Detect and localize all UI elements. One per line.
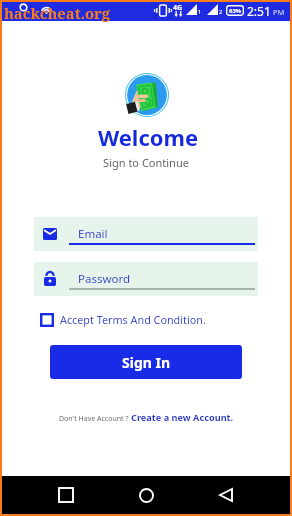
staticText: Don't Have Account ? (59, 414, 131, 424)
staticText: Sign In (122, 353, 171, 372)
button[interactable]: Back (212, 481, 240, 509)
staticText: Password (78, 271, 131, 287)
staticText: 63% (229, 7, 242, 15)
staticText: Sign to Continue (0, 155, 292, 170)
button[interactable]: Password (34, 262, 258, 296)
staticText: Accept Terms And Condition. (60, 312, 206, 327)
button[interactable]: Sign In (50, 345, 242, 379)
staticText: 2:51 (247, 3, 271, 19)
staticText: Welcome (2, 122, 292, 152)
staticText: Email (78, 226, 108, 242)
staticText: 1 (198, 8, 202, 15)
staticText: hackcheat.org (4, 3, 111, 23)
button[interactable]: Create a new Account. (131, 411, 234, 424)
staticText: PM (273, 7, 285, 17)
staticText: 4G (173, 3, 183, 13)
button[interactable]: Email (34, 217, 258, 251)
button[interactable]: Home (132, 481, 160, 509)
staticText: 2 (219, 8, 223, 15)
button[interactable]: Recents (52, 481, 80, 509)
button[interactable]: Accept Terms And Condition. (40, 312, 206, 327)
